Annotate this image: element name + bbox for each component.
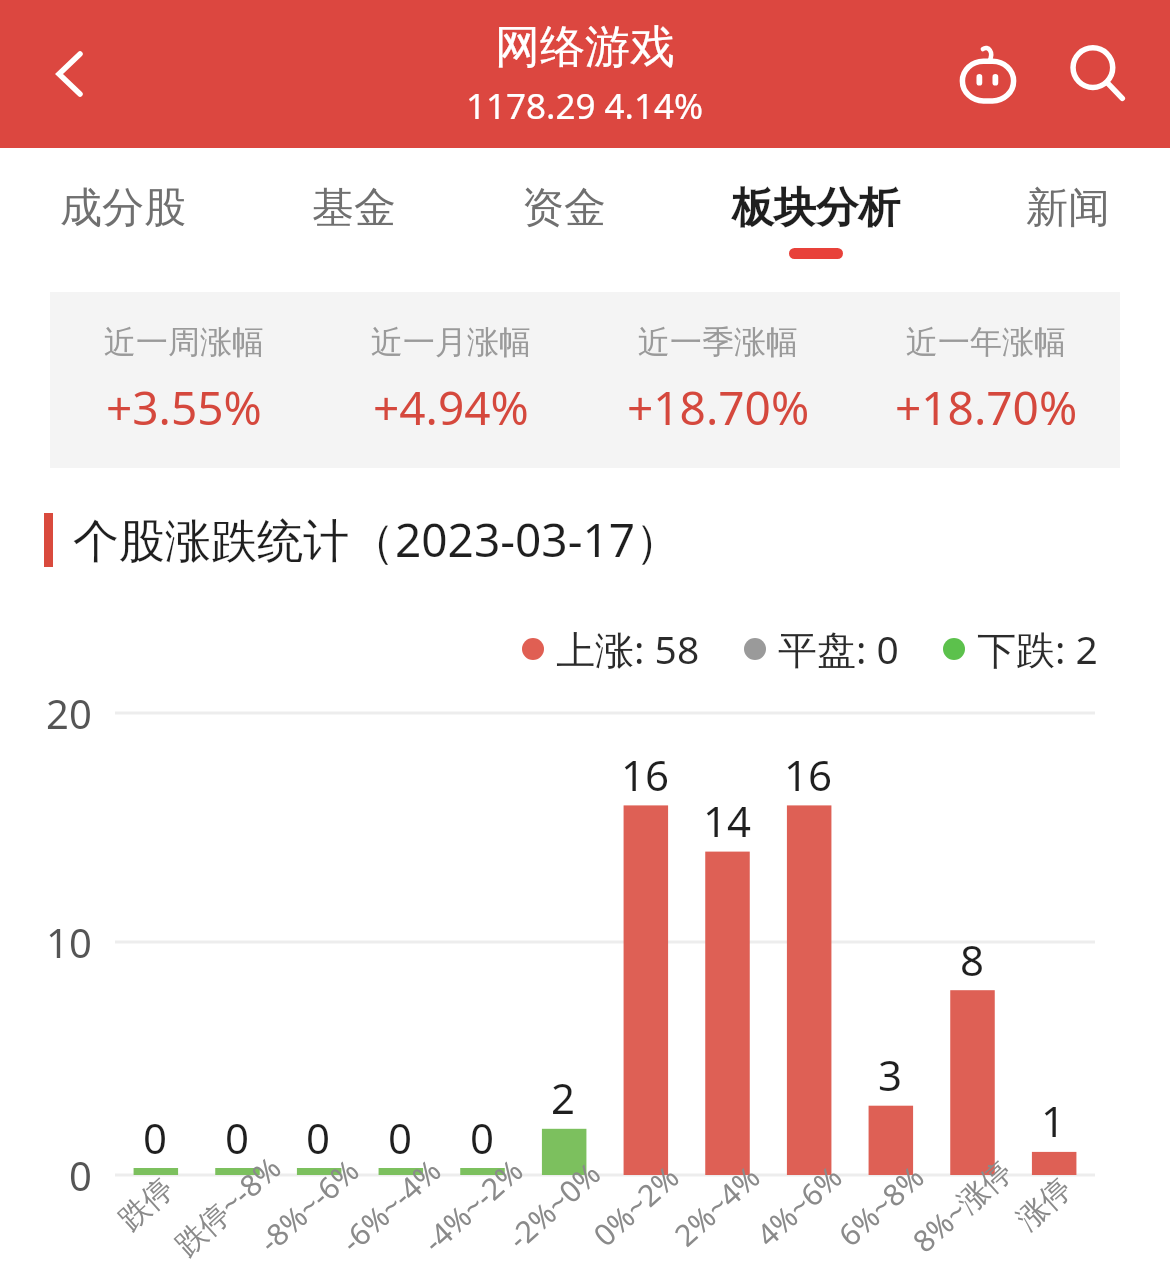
button[interactable]: 近一季涨幅 <box>584 292 852 468</box>
staticText: 4%~6% <box>747 1156 851 1255</box>
button[interactable]: Back <box>0 0 140 148</box>
staticText: 16 <box>621 746 670 803</box>
staticText: -2%~0% <box>498 1153 608 1258</box>
staticText: +3.55% <box>106 376 262 439</box>
staticText: 近一周涨幅 <box>104 322 264 362</box>
button[interactable]: 资金 <box>522 148 606 248</box>
staticText: 涨停 <box>1009 1170 1079 1238</box>
staticText: +18.70% <box>895 376 1078 439</box>
staticText: 16 <box>784 746 833 803</box>
staticText: 0 <box>69 1148 92 1202</box>
button[interactable]: 板块分析 <box>732 148 900 259</box>
staticText: 基金 <box>312 182 396 235</box>
staticText: 2%~4% <box>665 1156 769 1255</box>
staticText: 近一季涨幅 <box>638 322 798 362</box>
staticText: 8 <box>960 931 985 988</box>
staticText: 3 <box>878 1046 903 1103</box>
button[interactable]: 基金 <box>312 148 396 248</box>
staticText: 0%~2% <box>584 1156 688 1255</box>
button[interactable]: AI assistant <box>938 24 1038 124</box>
staticText: 网络游戏 <box>495 19 675 76</box>
button[interactable]: Search <box>1048 24 1148 124</box>
staticText: -6%~-4% <box>332 1150 449 1261</box>
button[interactable]: 上涨: 58 <box>522 622 700 675</box>
staticText: 资金 <box>522 182 606 235</box>
staticText: 1 <box>1041 1092 1066 1149</box>
staticText: 1178.29 4.14% <box>466 82 704 130</box>
staticText: 20 <box>46 686 92 740</box>
staticText: 板块分析 <box>732 182 900 235</box>
staticText: +18.70% <box>627 376 810 439</box>
button[interactable]: 近一周涨幅 <box>50 292 317 468</box>
staticText: 0 <box>306 1109 331 1166</box>
staticText: 10 <box>46 915 92 969</box>
staticText: 0 <box>225 1109 250 1166</box>
staticText: 平盘: 0 <box>778 622 899 675</box>
staticText: -8%~-6% <box>250 1150 367 1261</box>
staticText: 新闻 <box>1026 182 1110 235</box>
staticText: 8%~涨停 <box>904 1150 1020 1261</box>
button[interactable]: 成分股 <box>60 148 186 248</box>
staticText: 成分股 <box>60 182 186 235</box>
staticText: -4%~-2% <box>414 1150 531 1261</box>
button[interactable]: 近一年涨幅 <box>852 292 1120 468</box>
button[interactable]: 平盘: 0 <box>744 622 899 675</box>
button[interactable]: 下跌: 2 <box>943 622 1098 675</box>
button[interactable]: 近一月涨幅 <box>317 292 584 468</box>
staticText: 近一月涨幅 <box>371 322 531 362</box>
staticText: 0 <box>388 1109 413 1166</box>
button[interactable]: 新闻 <box>1026 148 1110 248</box>
staticText: 2 <box>551 1069 576 1126</box>
staticText: 0 <box>143 1109 168 1166</box>
staticText: 跌停~-8% <box>166 1147 289 1264</box>
staticText: 跌停 <box>111 1170 181 1238</box>
staticText: 上涨: 58 <box>556 622 700 675</box>
staticText: 下跌: 2 <box>977 622 1098 675</box>
staticText: 0 <box>470 1109 495 1166</box>
staticText: 近一年涨幅 <box>906 322 1066 362</box>
staticText: +4.94% <box>373 376 529 439</box>
staticText: 14 <box>703 792 752 849</box>
staticText: 6%~8% <box>829 1156 933 1255</box>
staticText: 个股涨跌统计（2023-03-17） <box>73 508 682 571</box>
